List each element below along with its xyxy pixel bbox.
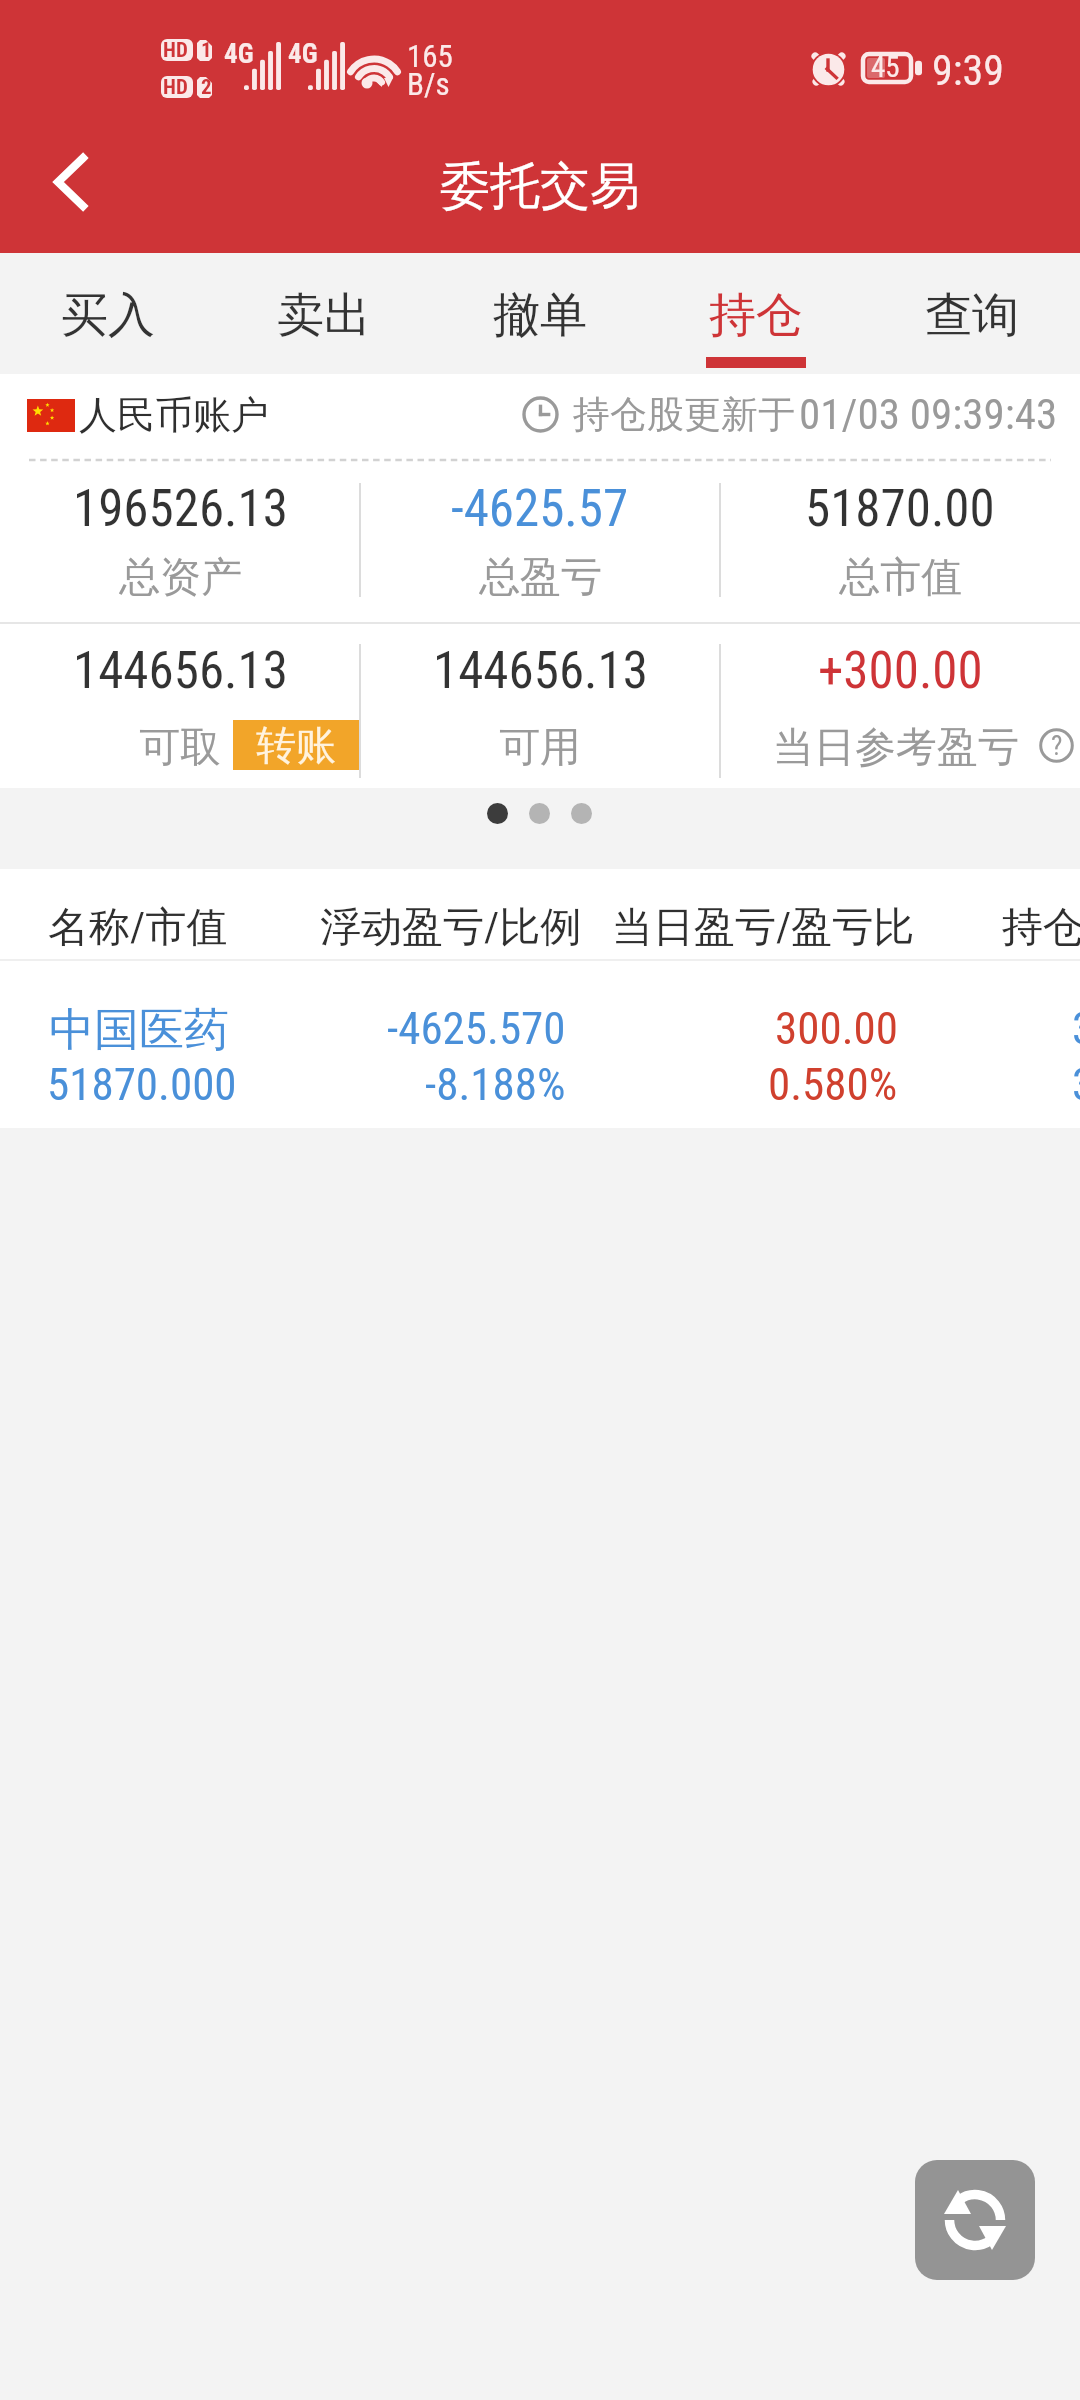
staticText: +300.00 <box>818 641 983 701</box>
button[interactable]: 卖出 <box>216 253 432 374</box>
button[interactable]: 中国医药 <box>0 961 1080 1128</box>
staticText: 撤单 <box>493 286 587 345</box>
staticText: 持仓量 <box>1002 902 1080 954</box>
button[interactable]: Refresh <box>915 2160 1035 2280</box>
button[interactable]: 转账 <box>233 720 359 770</box>
staticText: 01/03 09:39:43 <box>799 389 1058 439</box>
staticText: 当日盈亏/盈亏比 <box>612 902 915 954</box>
staticText: 4G <box>288 38 318 70</box>
staticText: 2 <box>201 75 212 100</box>
staticText: 总盈亏 <box>479 552 602 604</box>
staticText: 45 <box>871 50 900 84</box>
staticText: 持仓 <box>709 286 803 345</box>
staticText: 名称/市值 <box>48 902 228 954</box>
staticText: 165 <box>407 38 453 74</box>
staticText: 可取 <box>139 722 221 774</box>
button[interactable]: 查询 <box>864 253 1080 374</box>
staticText: 可用 <box>499 722 581 774</box>
staticText: 查询 <box>925 286 1019 345</box>
staticText: 196526.13 <box>73 479 288 539</box>
staticText: B/s <box>407 66 450 102</box>
staticText: 4G <box>224 38 254 70</box>
staticText: HD <box>163 38 188 63</box>
staticText: 144656.13 <box>73 641 288 701</box>
staticText: 0.580% <box>768 1058 898 1111</box>
staticText: 持仓股更新于 <box>573 391 795 438</box>
button[interactable]: Back <box>0 120 128 253</box>
staticText: 转账 <box>256 720 336 770</box>
staticText: 浮动盈亏/比例 <box>320 902 582 954</box>
button[interactable]: 撤单 <box>432 253 648 374</box>
staticText: 总市值 <box>839 552 962 604</box>
staticText: ? <box>1051 730 1063 762</box>
staticText: 3000 <box>1072 1002 1080 1055</box>
staticText: 9:39 <box>932 46 1005 95</box>
staticText: 51870.000 <box>47 1058 237 1111</box>
staticText: 51870.00 <box>805 479 995 539</box>
staticText: 中国医药 <box>49 1002 229 1059</box>
staticText: 300.00 <box>775 1002 898 1055</box>
staticText: -4625.57 <box>451 479 629 539</box>
staticText: 1 <box>201 38 212 63</box>
staticText: 人民币账户 <box>79 391 269 439</box>
staticText: 买入 <box>61 286 155 345</box>
staticText: 当日参考盈亏 <box>773 722 1019 774</box>
staticText: 总资产 <box>119 552 242 604</box>
button[interactable]: 买入 <box>0 253 216 374</box>
staticText: 144656.13 <box>433 641 648 701</box>
staticText: 委托交易 <box>440 155 640 218</box>
staticText: 卖出 <box>277 286 371 345</box>
button[interactable]: 持仓 <box>648 253 864 374</box>
staticText: HD <box>163 75 188 100</box>
staticText: -8.188% <box>425 1058 566 1111</box>
staticText: 3000 <box>1072 1058 1080 1111</box>
staticText: -4625.570 <box>387 1002 566 1055</box>
